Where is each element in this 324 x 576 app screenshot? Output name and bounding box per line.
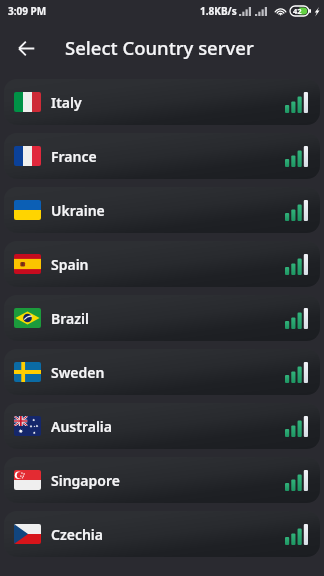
staticText: Australia bbox=[51, 417, 113, 436]
button[interactable]: France bbox=[4, 133, 320, 179]
staticText: Spain bbox=[51, 255, 89, 274]
staticText: 42 bbox=[293, 6, 302, 16]
button[interactable]: Spain bbox=[4, 241, 320, 287]
staticText: Czechia bbox=[51, 525, 104, 544]
staticText: Singapore bbox=[51, 471, 120, 490]
button[interactable]: Sweden bbox=[4, 349, 320, 395]
button[interactable]: Italy bbox=[4, 79, 320, 125]
staticText: Brazil bbox=[51, 309, 89, 328]
button[interactable]: Singapore bbox=[4, 457, 320, 503]
staticText: Ukraine bbox=[51, 201, 105, 220]
button[interactable]: Back bbox=[11, 33, 41, 63]
button[interactable]: Brazil bbox=[4, 295, 320, 341]
staticText: 3:09 PM bbox=[8, 4, 47, 18]
button[interactable]: Czechia bbox=[4, 511, 320, 557]
staticText: Italy bbox=[51, 93, 82, 112]
button[interactable]: Ukraine bbox=[4, 187, 320, 233]
staticText: France bbox=[51, 147, 97, 166]
staticText: Sweden bbox=[51, 363, 105, 382]
button[interactable]: Australia bbox=[4, 403, 320, 449]
staticText: 1.8KB/s bbox=[200, 4, 237, 18]
staticText: Select Country server bbox=[65, 35, 254, 60]
